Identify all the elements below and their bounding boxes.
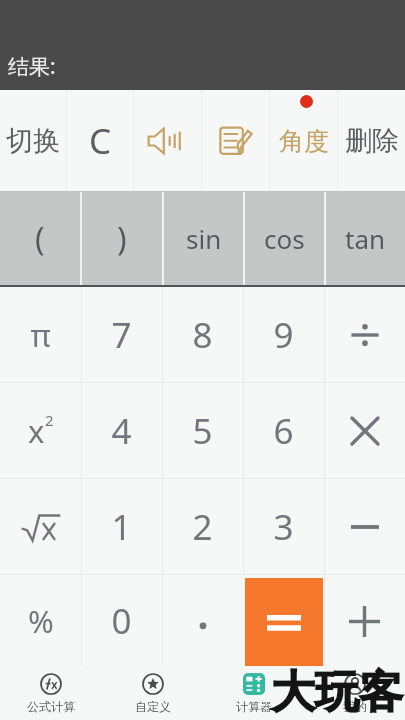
staticText: 9	[273, 311, 294, 359]
button[interactable]: 3	[243, 479, 324, 574]
button[interactable]	[162, 575, 243, 667]
staticText: x	[28, 410, 45, 452]
staticText: 2	[192, 503, 213, 551]
button[interactable]: (	[0, 192, 80, 285]
button[interactable]: 7	[81, 287, 162, 382]
staticText: C	[89, 117, 112, 165]
button[interactable]	[324, 479, 405, 574]
staticText: 删除	[345, 124, 399, 158]
button[interactable]	[324, 383, 405, 478]
button[interactable]: 9	[243, 287, 324, 382]
staticText: (	[35, 217, 45, 261]
button[interactable]: 2	[162, 479, 243, 574]
staticText: )	[117, 217, 127, 261]
button[interactable]: cos	[245, 192, 324, 285]
staticText: 大玩客	[271, 665, 403, 720]
button[interactable]: Sound	[134, 90, 201, 192]
button[interactable]: π	[0, 287, 81, 382]
button[interactable]: %	[0, 575, 81, 667]
button[interactable]: 5	[162, 383, 243, 478]
staticText: 结果:	[8, 52, 56, 81]
staticText: 计算器	[236, 699, 272, 714]
staticText: π	[30, 314, 51, 356]
button[interactable]	[0, 479, 81, 574]
staticText: 自定义	[135, 699, 171, 714]
button[interactable]: 公式计算	[0, 667, 102, 720]
button[interactable]: Notes	[202, 90, 269, 192]
button[interactable]: 计算器	[203, 667, 304, 720]
button[interactable]	[324, 287, 405, 382]
staticText: 切换	[6, 124, 60, 158]
button[interactable]: 8	[162, 287, 243, 382]
staticText: 2	[45, 410, 54, 430]
button[interactable]: 6	[243, 383, 324, 478]
staticText: 公式计算	[27, 699, 75, 714]
button[interactable]: sin	[164, 192, 243, 285]
staticText: 0	[111, 597, 132, 645]
staticText: tan	[345, 221, 386, 256]
staticText: 角度	[279, 126, 329, 157]
button[interactable]: 角度	[270, 90, 337, 192]
button[interactable]: x	[0, 383, 81, 478]
button[interactable]	[245, 578, 323, 666]
button[interactable]: 我的	[304, 667, 405, 720]
button[interactable]: 0	[81, 575, 162, 667]
staticText: sin	[186, 221, 222, 256]
staticText: 1	[111, 503, 132, 551]
button[interactable]: 删除	[338, 90, 405, 192]
staticText: 4	[111, 407, 132, 455]
staticText: 8	[192, 311, 213, 359]
button[interactable]: 1	[81, 479, 162, 574]
staticText: 我的	[343, 699, 367, 714]
staticText: cos	[264, 221, 305, 256]
button[interactable]: 自定义	[102, 667, 203, 720]
staticText: 3	[273, 503, 294, 551]
button[interactable]: 切换	[0, 90, 66, 192]
button[interactable]: )	[82, 192, 162, 285]
button[interactable]: 4	[81, 383, 162, 478]
staticText: 6	[273, 407, 294, 455]
staticText: %	[28, 600, 54, 642]
staticText: 7	[111, 311, 132, 359]
button[interactable]	[324, 575, 405, 667]
staticText: 5	[192, 407, 213, 455]
button[interactable]: C	[67, 90, 133, 192]
button[interactable]: tan	[326, 192, 405, 285]
